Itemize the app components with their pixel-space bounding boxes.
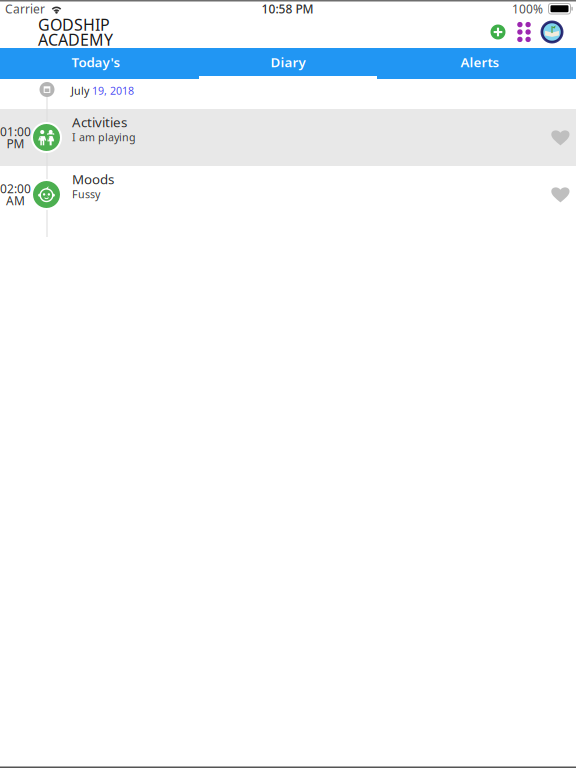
staticText: Moods bbox=[72, 170, 114, 188]
button[interactable]: 01:00 bbox=[0, 109, 576, 166]
button[interactable]: Today's bbox=[0, 48, 192, 79]
staticText: Today's bbox=[71, 53, 120, 71]
staticText: AM bbox=[6, 192, 25, 208]
staticText: Fussy bbox=[72, 187, 100, 201]
staticText: GODSHIP bbox=[38, 14, 110, 35]
button[interactable]: Diary bbox=[192, 48, 384, 79]
staticText: 19, 2018 bbox=[92, 83, 134, 98]
staticText: 100% bbox=[512, 1, 543, 17]
staticText: 01:00 bbox=[0, 123, 31, 139]
staticText: 10:58 PM bbox=[261, 1, 313, 17]
staticText: Diary bbox=[270, 53, 305, 71]
button[interactable]: Add entry bbox=[485, 16, 511, 48]
button[interactable]: Menu bbox=[511, 16, 537, 48]
button[interactable]: Alerts bbox=[384, 48, 576, 79]
staticText: Carrier bbox=[5, 1, 45, 17]
staticText: PM bbox=[6, 135, 24, 151]
staticText: July bbox=[71, 83, 92, 98]
button[interactable]: 02:00 bbox=[0, 166, 576, 223]
staticText: 02:00 bbox=[0, 180, 31, 196]
staticText: I am playing bbox=[72, 130, 136, 144]
staticText: Alerts bbox=[460, 53, 499, 71]
staticText: Activities bbox=[72, 113, 127, 131]
staticText: ACADEMY bbox=[38, 29, 113, 50]
button[interactable]: Profile bbox=[537, 16, 567, 48]
